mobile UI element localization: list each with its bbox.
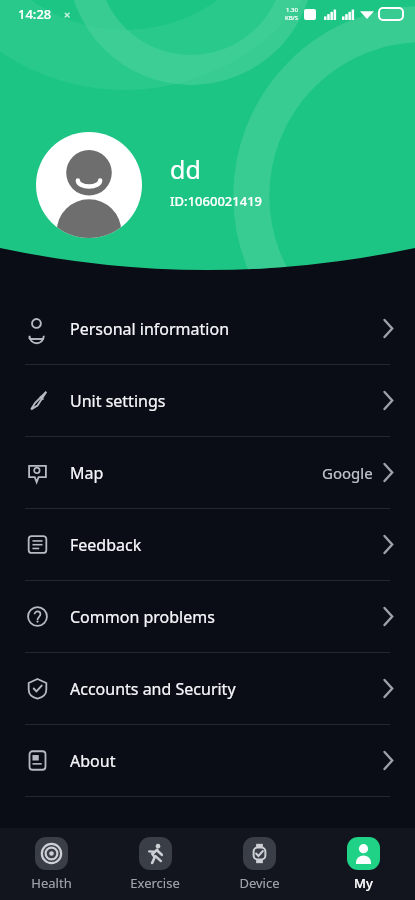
staticText: Google <box>322 463 373 483</box>
button[interactable]: Feedback <box>0 509 415 580</box>
button[interactable]: About <box>0 725 415 796</box>
button[interactable]: Accounts and Security <box>0 653 415 724</box>
staticText: 1.30 <box>286 6 298 14</box>
staticText: Feedback <box>70 534 142 556</box>
staticText: My <box>354 874 373 892</box>
staticText: Accounts and Security <box>70 678 236 700</box>
staticText: ID:1060021419 <box>170 192 263 210</box>
button[interactable]: Health <box>0 831 103 898</box>
staticText: dd <box>170 152 201 186</box>
button[interactable]: Device <box>207 831 311 898</box>
staticText: Exercise <box>130 874 180 892</box>
button[interactable]: Common problems <box>0 581 415 652</box>
button[interactable]: Exercise <box>103 831 207 898</box>
staticText: KB/S <box>285 14 299 22</box>
staticText: 14:28 <box>18 5 52 23</box>
staticText: Common problems <box>70 606 215 628</box>
button[interactable]: Unit settings <box>0 365 415 436</box>
staticText: Health <box>31 874 72 892</box>
button[interactable]: My <box>311 831 415 898</box>
button[interactable]: Profile avatar <box>36 132 142 238</box>
staticText: Device <box>239 874 280 892</box>
staticText: Personal information <box>70 318 230 340</box>
staticText: About <box>70 750 116 772</box>
button[interactable]: Personal information <box>0 293 415 364</box>
staticText: × <box>64 7 71 22</box>
button[interactable]: Map <box>0 437 415 508</box>
staticText: Map <box>70 462 104 484</box>
staticText: Unit settings <box>70 390 166 412</box>
